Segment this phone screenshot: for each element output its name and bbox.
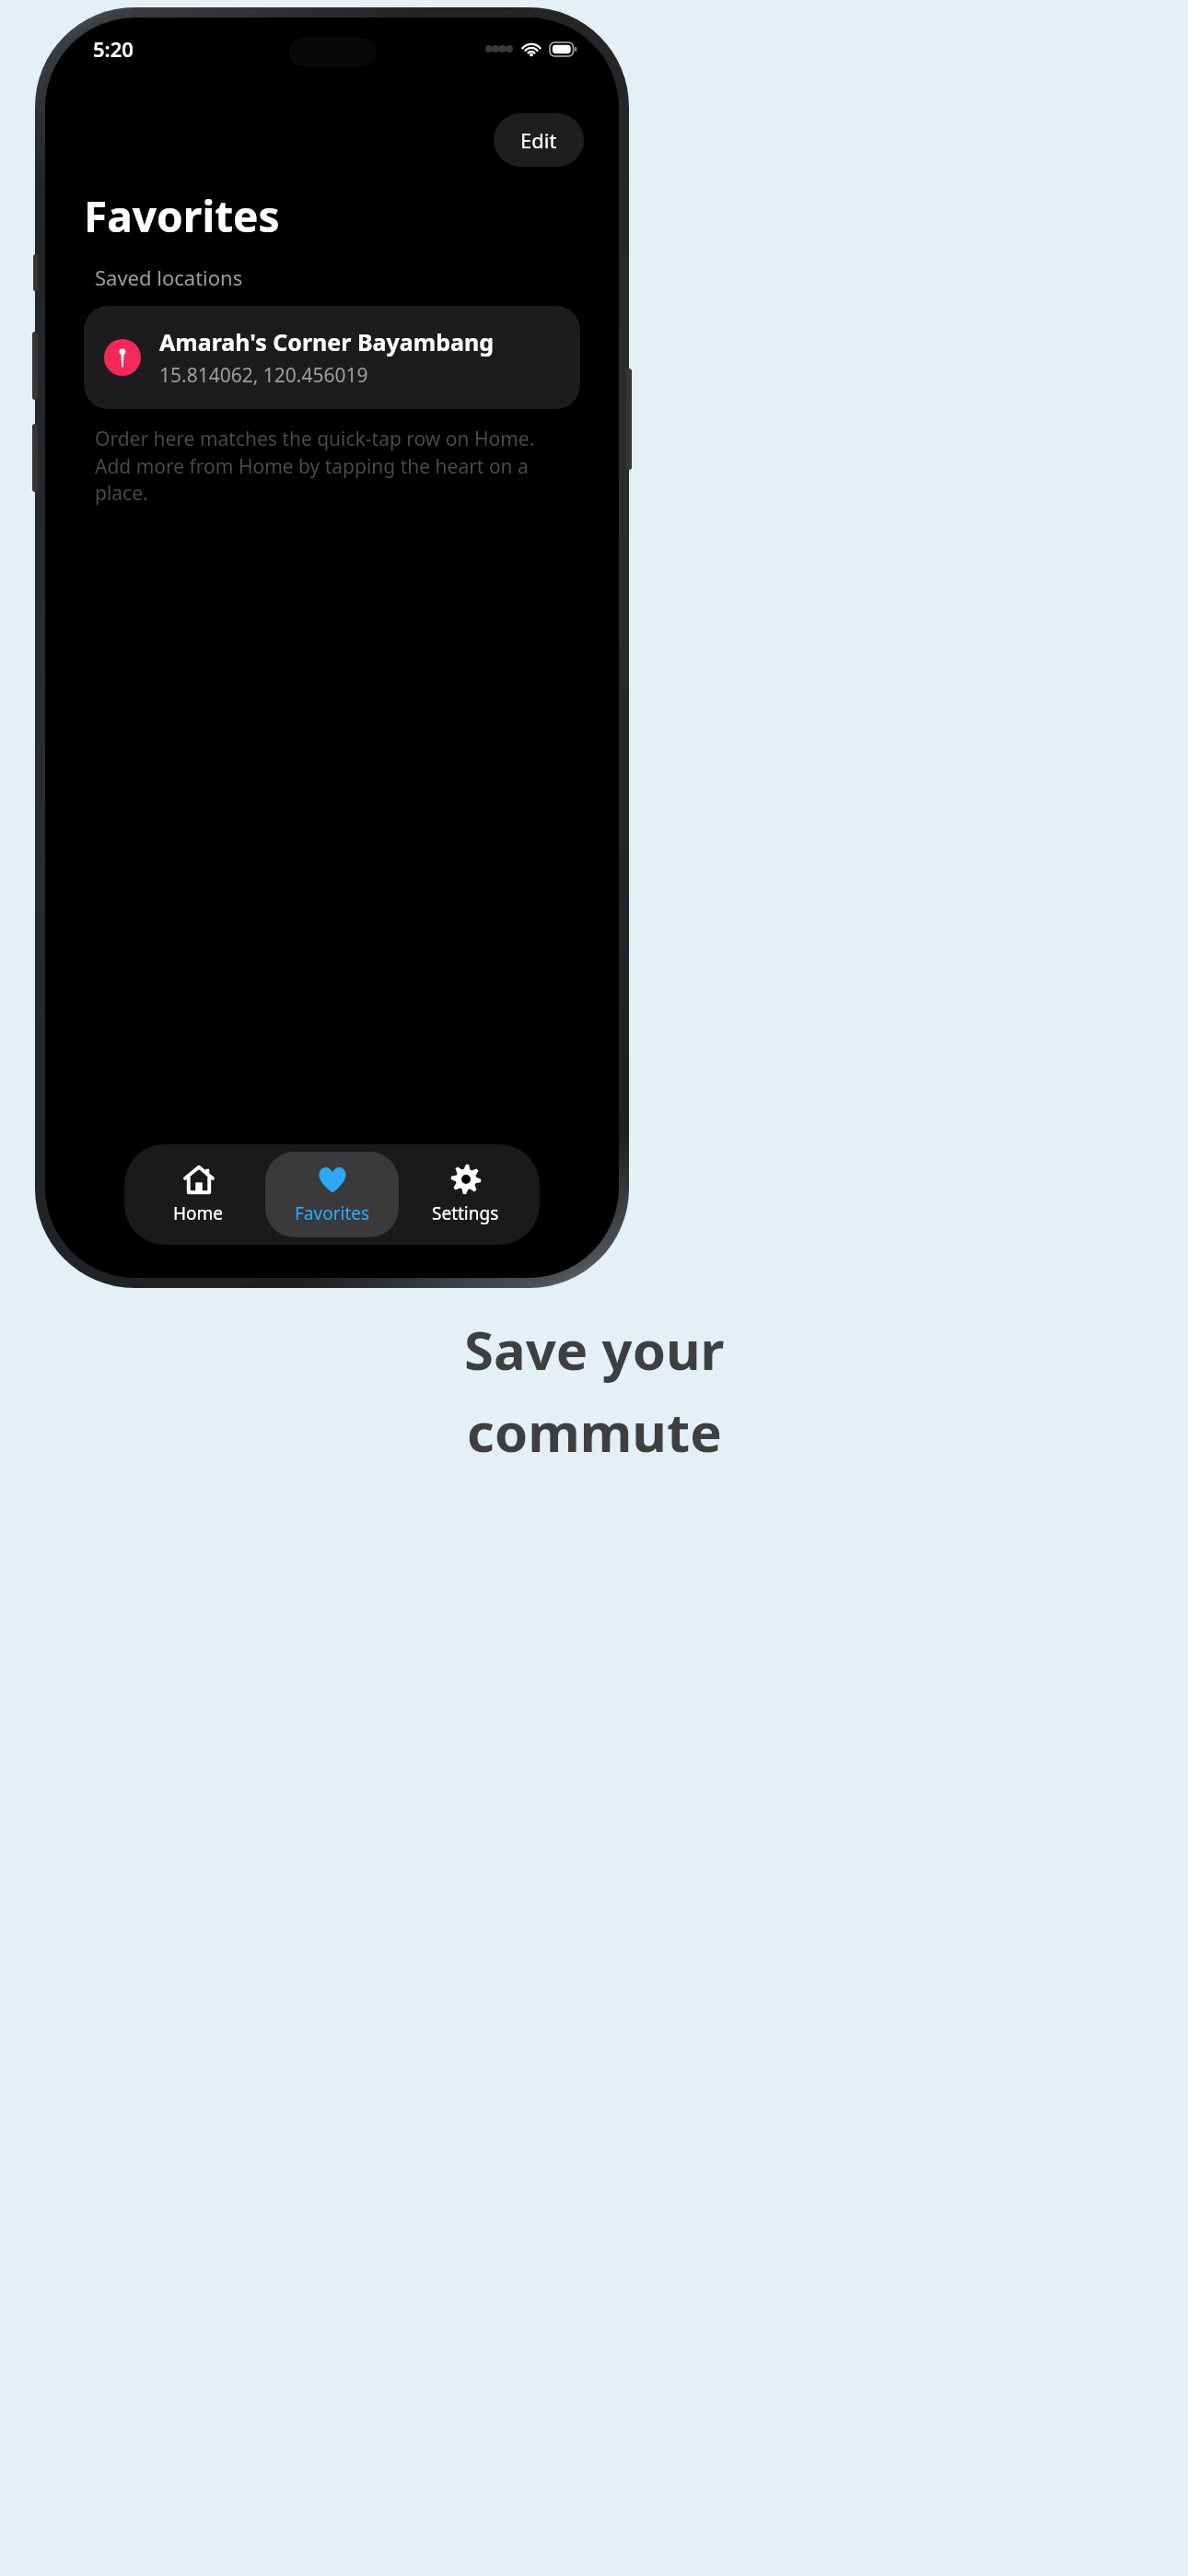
button[interactable]: Home [132,1152,265,1237]
staticText: Save your [464,1313,725,1386]
staticText: 5:20 [93,35,134,63]
staticText: Home [173,1201,224,1225]
button[interactable]: Favorites [265,1152,399,1237]
button[interactable]: Amarah's Corner Bayambang [84,306,580,409]
staticText: commute [467,1395,722,1468]
staticText: Favorites [84,187,280,245]
button[interactable]: Edit [494,113,584,167]
staticText: Amarah's Corner Bayambang [159,326,495,357]
staticText: Edit [520,126,557,154]
staticText: Settings [432,1201,499,1225]
staticText: 15.814062, 120.456019 [159,362,368,389]
staticText: Order here matches the quick-tap row on … [95,426,569,506]
staticText: Favorites [295,1201,370,1225]
staticText: Saved locations [95,263,243,291]
button[interactable]: Settings [399,1152,532,1237]
